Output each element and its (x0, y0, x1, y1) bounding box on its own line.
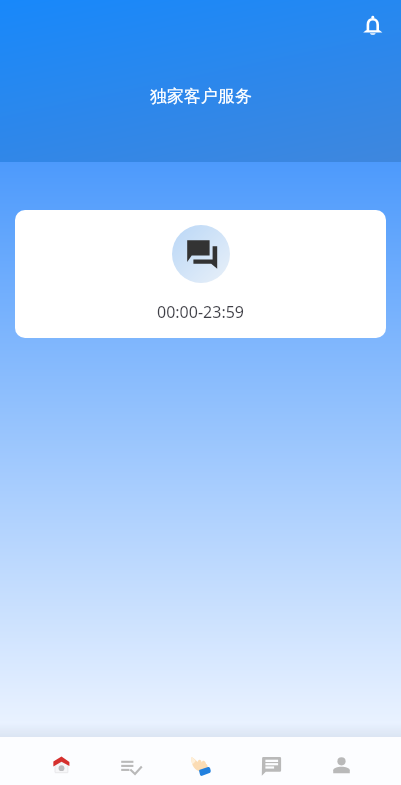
staticText: 00:00-23:59 (157, 301, 244, 323)
button[interactable]: Messages (236, 737, 306, 785)
staticText: 独家客户服务 (150, 86, 252, 107)
button[interactable]: Home (25, 737, 96, 785)
button[interactable]: 00:00-23:59 (15, 210, 386, 338)
button[interactable]: Orders (96, 737, 166, 785)
button[interactable]: Notifications (354, 7, 391, 44)
button[interactable]: Profile (306, 737, 376, 785)
button[interactable]: Promotion (166, 737, 236, 785)
